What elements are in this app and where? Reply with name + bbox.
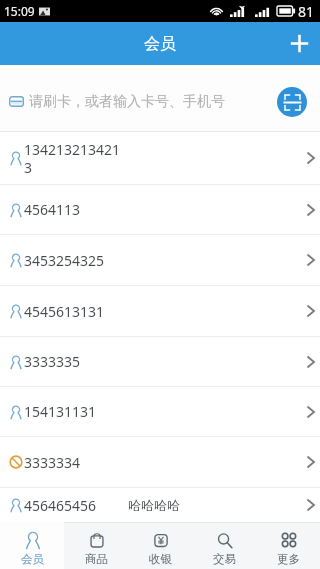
button[interactable]: 1342132134213 (0, 132, 320, 184)
button[interactable]: 会员 (0, 522, 64, 569)
staticText: 15:09 (4, 3, 35, 19)
staticText: 4564113 (24, 200, 125, 219)
staticText: 请刷卡，或者输入卡号、手机号 (29, 93, 225, 111)
staticText: 3333335 (24, 352, 125, 371)
button[interactable]: 商品 (64, 522, 128, 569)
staticText: 更多 (277, 552, 300, 566)
staticText: 154131131 (24, 402, 125, 421)
staticText: 1342132134213 (24, 140, 125, 177)
staticText: 会员 (21, 552, 44, 566)
button[interactable]: 3453254325 (0, 235, 320, 285)
staticText: 3453254325 (24, 251, 125, 270)
staticText: 商品 (85, 552, 108, 566)
button[interactable]: 3333335 (0, 337, 320, 386)
staticText: 3333334 (24, 453, 125, 472)
button[interactable]: Add member (278, 22, 320, 65)
button[interactable]: 3333334 (0, 437, 320, 487)
staticText: 会员 (144, 34, 176, 54)
button[interactable]: 更多 (256, 522, 320, 569)
staticText: 81 (298, 2, 315, 21)
staticText: 456465456 (24, 496, 125, 515)
button[interactable]: 4564113 (0, 185, 320, 234)
button[interactable]: 4545613131 (0, 286, 320, 336)
staticText: 交易 (213, 552, 236, 566)
staticText: 收银 (149, 552, 172, 566)
button[interactable]: 收银 (128, 522, 192, 569)
staticText: 哈哈哈哈 (128, 497, 180, 513)
button[interactable]: 154131131 (0, 387, 320, 436)
button[interactable]: 交易 (192, 522, 256, 569)
staticText: 4545613131 (24, 302, 125, 321)
button[interactable]: 456465456 (0, 488, 320, 522)
button[interactable]: Scan code (277, 87, 307, 117)
